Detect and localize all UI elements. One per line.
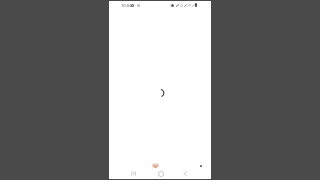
button[interactable]: Home [155,168,166,179]
staticText: 10:04 [121,3,132,9]
button[interactable]: Action [151,163,160,169]
button[interactable]: Back [180,168,191,179]
button[interactable]: Recent apps [128,168,139,179]
